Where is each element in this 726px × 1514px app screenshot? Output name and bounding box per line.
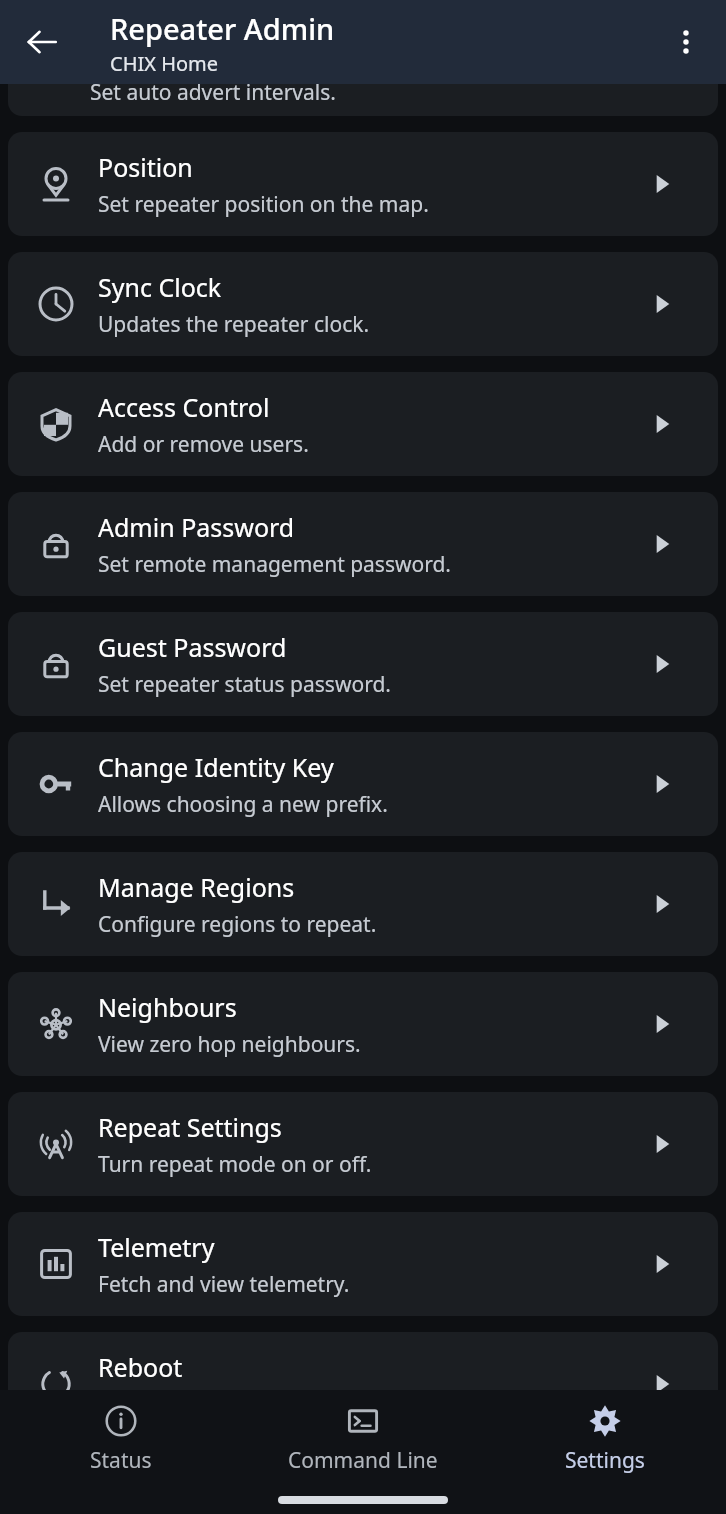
staticText: Access Control: [98, 390, 270, 424]
staticText: Set repeater status password.: [98, 670, 391, 699]
staticText: Change Identity Key: [98, 750, 334, 784]
staticText: Configure regions to repeat.: [98, 910, 377, 939]
staticText: Manage Regions: [98, 870, 295, 904]
button[interactable]: Admin Password: [8, 492, 718, 596]
staticText: Command Line: [288, 1446, 438, 1475]
button[interactable]: Reboot: [8, 1332, 718, 1436]
staticText: Restart now.: [98, 1390, 221, 1419]
button[interactable]: Telemetry: [8, 1212, 718, 1316]
staticText: Set remote management password.: [98, 550, 451, 579]
staticText: Position: [98, 150, 193, 184]
button[interactable]: Sync Clock: [8, 252, 718, 356]
staticText: Neighbours: [98, 990, 237, 1024]
staticText: Set auto advert intervals.: [90, 84, 336, 107]
staticText: Add or remove users.: [98, 430, 309, 459]
staticText: Set repeater position on the map.: [98, 190, 429, 219]
staticText: View zero hop neighbours.: [98, 1030, 361, 1059]
staticText: Sync Clock: [98, 270, 222, 304]
button[interactable]: Neighbours: [8, 972, 718, 1076]
button[interactable]: Back: [12, 12, 72, 72]
staticText: Status: [90, 1446, 152, 1475]
staticText: CHIX Home: [110, 50, 219, 77]
staticText: Fetch and view telemetry.: [98, 1270, 350, 1299]
staticText: Admin Password: [98, 510, 295, 544]
button[interactable]: Command Line: [242, 1390, 484, 1482]
button[interactable]: More options: [656, 12, 716, 72]
button[interactable]: Status: [0, 1390, 242, 1482]
button[interactable]: Change Identity Key: [8, 732, 718, 836]
button[interactable]: Guest Password: [8, 612, 718, 716]
staticText: Settings: [565, 1446, 645, 1475]
button[interactable]: Settings: [484, 1390, 726, 1482]
staticText: Repeater Admin: [110, 9, 335, 48]
button[interactable]: Repeat Settings: [8, 1092, 718, 1196]
staticText: Telemetry: [98, 1230, 215, 1264]
button[interactable]: Set auto advert intervals.: [8, 84, 718, 116]
button[interactable]: Position: [8, 132, 718, 236]
button[interactable]: Manage Regions: [8, 852, 718, 956]
staticText: Allows choosing a new prefix.: [98, 790, 388, 819]
staticText: Reboot: [98, 1350, 183, 1384]
staticText: Guest Password: [98, 630, 287, 664]
button[interactable]: Access Control: [8, 372, 718, 476]
staticText: Repeat Settings: [98, 1110, 282, 1144]
staticText: Updates the repeater clock.: [98, 310, 370, 339]
staticText: Turn repeat mode on or off.: [98, 1150, 372, 1179]
